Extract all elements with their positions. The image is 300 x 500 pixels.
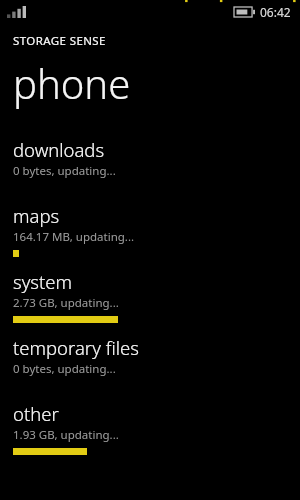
other: Signal strength: [7, 6, 26, 18]
staticText: maps: [13, 203, 60, 228]
staticText: STORAGE SENSE: [13, 33, 106, 49]
staticText: 0 bytes, updating...: [13, 361, 116, 377]
staticText: 164.17 MB, updating...: [13, 229, 135, 245]
button[interactable]: system: [0, 263, 300, 329]
staticText: 0 bytes, updating...: [13, 163, 116, 179]
staticText: other: [13, 401, 59, 426]
staticText: 1.93 GB, updating...: [13, 427, 119, 443]
staticText: phone: [13, 56, 131, 110]
button[interactable]: other: [0, 395, 300, 461]
button[interactable]: temporary files: [0, 329, 300, 395]
button[interactable]: downloads: [0, 131, 300, 197]
staticText: 06:42: [260, 4, 291, 20]
staticText: system: [13, 269, 73, 294]
staticText: temporary files: [13, 335, 139, 360]
other: Battery: [234, 7, 255, 17]
staticText: downloads: [13, 137, 105, 162]
staticText: 2.73 GB, updating...: [13, 295, 119, 311]
button[interactable]: maps: [0, 197, 300, 263]
